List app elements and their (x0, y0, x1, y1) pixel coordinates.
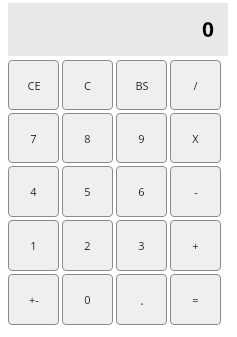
staticText: 7 (30, 131, 37, 146)
staticText: CE (27, 78, 41, 93)
button[interactable]: +- (8, 274, 59, 325)
staticText: 2 (84, 238, 91, 253)
staticText: 6 (138, 184, 145, 199)
staticText: C (84, 78, 91, 93)
button[interactable]: . (116, 274, 167, 325)
staticText: 1 (30, 238, 37, 253)
staticText: X (192, 131, 199, 146)
button[interactable]: BS (116, 60, 167, 110)
staticText: 5 (84, 184, 91, 199)
staticText: 0 (84, 292, 91, 307)
staticText: / (193, 78, 198, 93)
button[interactable]: = (170, 274, 221, 325)
staticText: 9 (138, 131, 145, 146)
staticText: + (192, 238, 199, 253)
button[interactable]: 4 (8, 166, 59, 217)
button[interactable]: CE (8, 60, 59, 110)
staticText: 0 (201, 15, 214, 44)
staticText: . (140, 291, 144, 309)
staticText: 3 (138, 238, 145, 253)
button[interactable]: / (170, 60, 221, 110)
button[interactable]: X (170, 113, 221, 163)
button[interactable]: 3 (116, 220, 167, 271)
button[interactable]: 8 (62, 113, 113, 163)
button[interactable]: - (170, 166, 221, 217)
button[interactable]: 0 (62, 274, 113, 325)
staticText: BS (135, 78, 149, 93)
button[interactable]: + (170, 220, 221, 271)
staticText: 8 (84, 131, 91, 146)
button[interactable]: 7 (8, 113, 59, 163)
button[interactable]: 6 (116, 166, 167, 217)
staticText: - (194, 184, 198, 199)
staticText: +- (29, 292, 39, 307)
button[interactable]: C (62, 60, 113, 110)
button[interactable]: 9 (116, 113, 167, 163)
staticText: = (192, 292, 199, 307)
button[interactable]: 1 (8, 220, 59, 271)
button[interactable]: 5 (62, 166, 113, 217)
staticText: 4 (30, 184, 37, 199)
button[interactable]: 2 (62, 220, 113, 271)
